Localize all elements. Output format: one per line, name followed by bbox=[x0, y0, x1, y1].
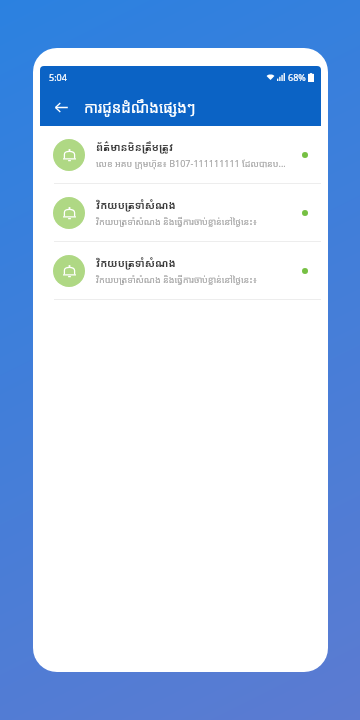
staticText: វិកយបត្រទាំសំណង និងធ្វើការចាប់ខ្លាន់នៅថ្… bbox=[96, 273, 258, 285]
staticText: 5:04 bbox=[49, 71, 67, 83]
staticText: 68% bbox=[288, 71, 306, 83]
staticText: វិកយបត្រទាំសំណង bbox=[96, 256, 176, 270]
staticText: ព័ត៌មានមិនត្រឹមត្រូវ bbox=[96, 140, 174, 154]
button[interactable]: ព័ត៌មានមិនត្រឹមត្រូវ bbox=[40, 126, 321, 183]
staticText: វិកយបត្រទាំសំណង bbox=[96, 198, 176, 212]
staticText: ការជូនដំណឹងផ្សេងៗ bbox=[84, 97, 196, 117]
button[interactable]: វិកយបត្រទាំសំណង bbox=[40, 184, 321, 241]
button[interactable]: វិកយបត្រទាំសំណង bbox=[40, 242, 321, 299]
staticText: វិកយបត្រទាំសំណង និងធ្វើការចាប់ខ្លាន់នៅថ្… bbox=[96, 215, 258, 227]
staticText: លេខ អគប ក្រុមហ៊ុន៖ B107-111111111 ដែលបាន… bbox=[96, 157, 286, 169]
button[interactable]: Back bbox=[46, 92, 76, 122]
